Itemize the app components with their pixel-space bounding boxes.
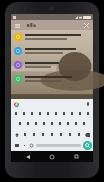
button[interactable]: [16, 118, 24, 129]
button[interactable]: Back: [21, 151, 35, 162]
button[interactable]: [60, 108, 68, 118]
button[interactable]: [76, 108, 84, 118]
button[interactable]: [47, 129, 56, 140]
button[interactable]: Comma: [22, 141, 27, 150]
button[interactable]: [11, 30, 93, 44]
button[interactable]: [20, 108, 28, 118]
button[interactable]: [12, 108, 20, 118]
button[interactable]: [38, 129, 47, 140]
button[interactable]: Google: [13, 101, 19, 107]
button[interactable]: Shift: [12, 129, 21, 140]
button[interactable]: Menu: [14, 22, 21, 29]
button[interactable]: [52, 108, 60, 118]
button[interactable]: [29, 129, 38, 140]
button[interactable]: [64, 118, 72, 129]
button[interactable]: [36, 108, 44, 118]
button[interactable]: [28, 108, 36, 118]
button[interactable]: Search: [83, 141, 92, 150]
button[interactable]: [68, 108, 76, 118]
button[interactable]: Backspace: [83, 129, 92, 140]
button[interactable]: [48, 118, 56, 129]
button[interactable]: [72, 118, 80, 129]
button[interactable]: [65, 129, 74, 140]
button[interactable]: [24, 118, 32, 129]
button[interactable]: Voice input: [85, 101, 91, 107]
button[interactable]: Home: [45, 151, 59, 162]
button[interactable]: [80, 118, 88, 129]
button[interactable]: [11, 72, 93, 86]
button[interactable]: [11, 58, 93, 72]
button[interactable]: [21, 129, 29, 140]
button[interactable]: [32, 118, 40, 129]
button[interactable]: Emoji: [28, 141, 34, 150]
button[interactable]: [56, 129, 65, 140]
button[interactable]: [40, 118, 48, 129]
button[interactable]: [11, 44, 93, 58]
button[interactable]: [56, 118, 64, 129]
button[interactable]: Space: [35, 141, 82, 150]
button[interactable]: [44, 108, 52, 118]
button[interactable]: Recents: [69, 151, 83, 162]
button[interactable]: [12, 141, 21, 150]
button[interactable]: Clear search: [82, 21, 90, 29]
button[interactable]: [27, 20, 82, 30]
button[interactable]: [84, 108, 92, 118]
button[interactable]: [74, 129, 83, 140]
